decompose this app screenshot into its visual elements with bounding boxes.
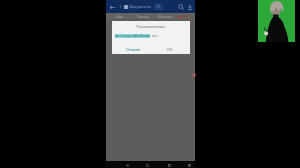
staticText: Изменён [158,14,173,19]
staticText: ● REC [178,14,189,19]
button[interactable]: OK [167,47,173,52]
staticText: Переименовать [112,24,190,29]
staticText: Имя [116,14,124,19]
button[interactable]: Screenshot [187,163,191,167]
button[interactable]: Recents [167,163,171,167]
button[interactable]: Home [145,163,149,167]
other: Recording [192,73,196,77]
staticText: Отмена [126,47,141,52]
staticText: Размер [137,14,150,19]
staticText: Документы [129,4,152,9]
staticText: Акт по сдаче. Абак Москва [115,34,150,38]
button[interactable]: Отмена [126,47,141,52]
button[interactable]: Download [185,2,194,11]
button[interactable]: Search [176,2,185,11]
button[interactable]: Back [125,163,129,167]
staticText: .docx [151,34,158,38]
staticText: OK [167,47,173,52]
staticText: 12 [156,4,161,9]
button[interactable]: Back [107,2,117,12]
other: Webcam overlay [258,0,295,42]
